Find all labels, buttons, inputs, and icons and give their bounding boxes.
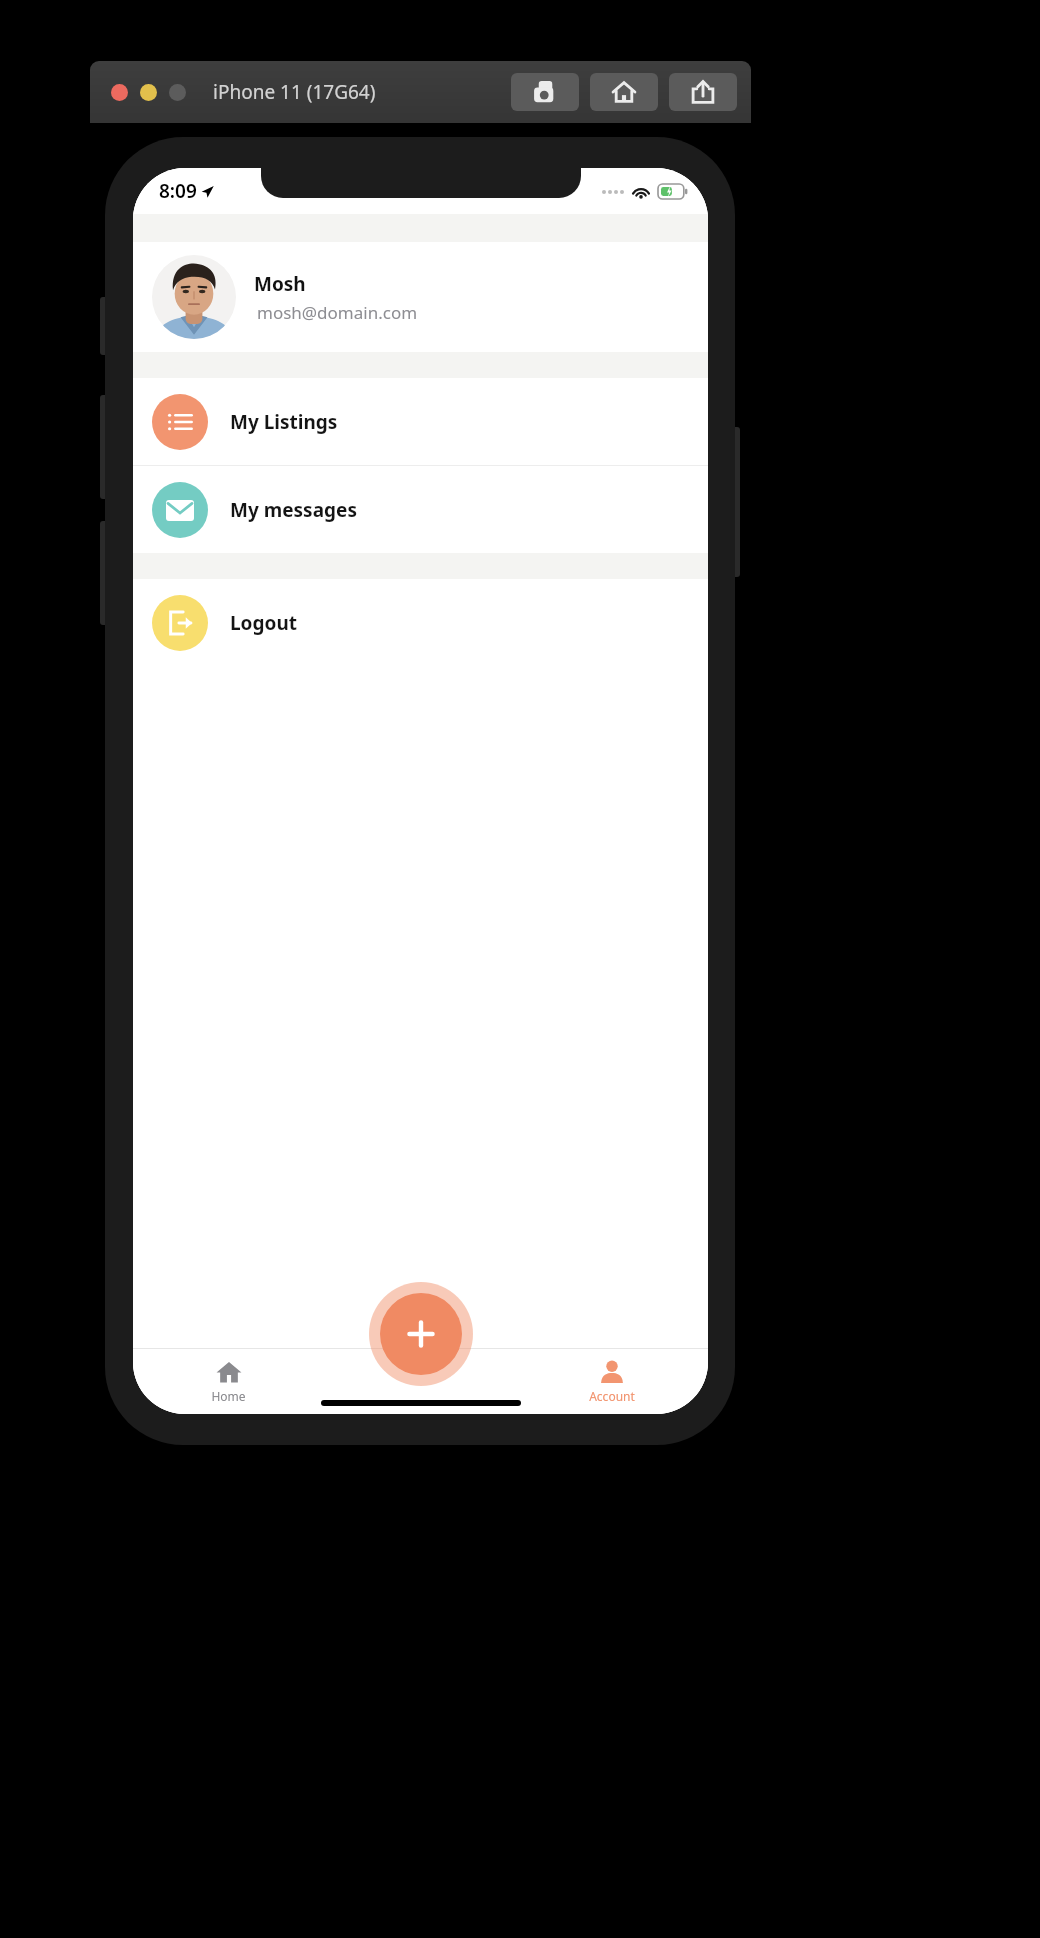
button[interactable]: Zoom — [169, 84, 186, 101]
button[interactable]: Minimize — [140, 84, 157, 101]
button[interactable]: Add new listing — [380, 1293, 462, 1375]
button[interactable]: Mosh — [133, 242, 708, 352]
button[interactable]: Account — [516, 1348, 708, 1414]
button[interactable]: Screenshot — [511, 73, 579, 111]
button[interactable]: Logout — [133, 579, 708, 666]
button[interactable]: Share — [669, 73, 737, 111]
staticText: Home — [211, 1388, 246, 1404]
staticText: iPhone 11 (17G64) — [213, 79, 376, 105]
staticText: Mosh — [254, 271, 306, 297]
staticText: Account — [589, 1388, 635, 1404]
staticText: Logout — [230, 610, 297, 636]
button[interactable]: My messages — [133, 466, 708, 553]
button[interactable]: My Listings — [133, 378, 708, 465]
staticText: My messages — [230, 497, 357, 523]
staticText: 8:09 — [159, 178, 197, 204]
button[interactable]: Home — [590, 73, 658, 111]
button[interactable]: Home — [133, 1348, 324, 1414]
staticText: mosh@domain.com — [257, 301, 418, 324]
staticText: My Listings — [230, 409, 338, 435]
button[interactable]: Close — [111, 84, 128, 101]
